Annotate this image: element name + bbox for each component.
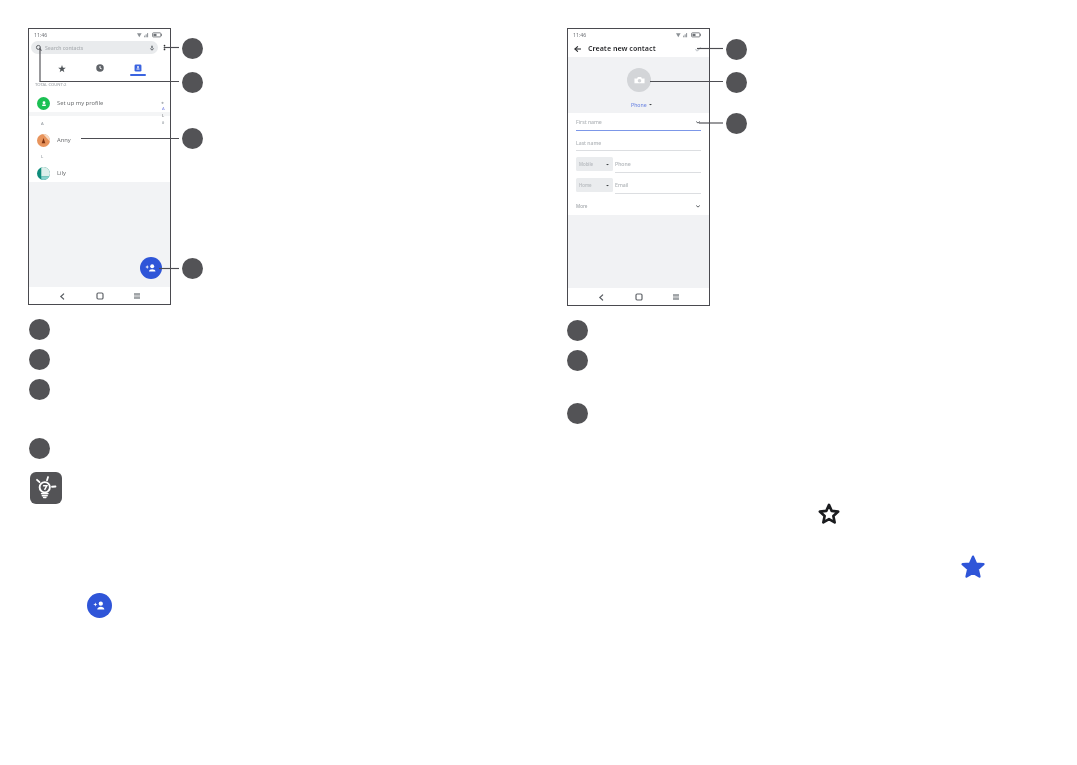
button[interactable]: Callout marker [182,72,203,93]
button[interactable]: Callout marker [567,320,588,341]
button[interactable]: Home [92,288,108,304]
staticText: Set up my profile [57,99,104,107]
button[interactable]: Callout marker [29,379,50,400]
button[interactable]: Add photo [627,68,651,92]
button[interactable]: Home [631,289,647,305]
button[interactable]: Tip [30,472,62,504]
button[interactable]: Anny [29,131,170,149]
staticText: Email [615,181,629,188]
button[interactable]: Search contacts [31,41,158,54]
button[interactable]: Mobile [576,157,613,171]
button[interactable]: Callout marker [29,438,50,459]
staticText: Search contacts [45,44,84,51]
button[interactable]: Callout marker [726,113,747,134]
button[interactable]: Contacts [119,54,157,81]
button[interactable]: Favourites [42,54,81,81]
staticText: Mobile [579,161,594,167]
staticText: A [162,106,165,112]
staticText: 11:46 [573,31,587,38]
button[interactable]: Recent apps [668,289,684,305]
staticText: TOTAL COUNT:2 [35,82,67,88]
button[interactable]: Callout marker [567,350,588,371]
button[interactable]: Save [692,43,704,55]
button[interactable]: Alphabet index [160,101,166,125]
staticText: Last name [576,139,602,146]
staticText: Phone [615,160,631,167]
button[interactable]: More [576,196,701,215]
staticText: ★ [161,101,165,105]
button[interactable]: Lily [29,164,170,182]
staticText: Anny [57,136,71,144]
button[interactable]: Callout marker [29,349,50,370]
button[interactable]: Set up my profile [29,94,170,112]
staticText: L [41,154,44,160]
button[interactable]: First name [576,113,701,130]
staticText: Phone [631,101,647,108]
button[interactable]: Callout marker [567,403,588,424]
button[interactable]: Callout marker [726,39,747,60]
staticText: More [576,203,588,209]
button[interactable]: Callout marker [182,38,203,59]
button[interactable]: Recents [81,54,119,81]
button[interactable]: More options [158,41,170,53]
button[interactable]: Back [54,288,70,304]
staticText: First name [576,118,602,125]
button[interactable]: Favourite off [818,503,840,525]
button[interactable]: Callout marker [29,319,50,340]
button[interactable]: Create new contact [140,257,162,279]
staticText: Create new contact [588,44,656,54]
button[interactable]: Favourite on [962,556,984,578]
staticText: # [162,120,165,125]
staticText: A [41,121,44,127]
button[interactable]: Back [593,289,609,305]
staticText: Home [579,182,592,188]
button[interactable]: Callout marker [182,258,203,279]
staticText: 11:46 [34,31,48,38]
button[interactable]: Last name [576,134,701,150]
button[interactable]: Callout marker [726,72,747,93]
button[interactable]: Back [572,43,584,55]
button[interactable]: Add contact [87,593,112,618]
button[interactable]: Home [576,178,613,192]
staticText: L [162,113,165,119]
button[interactable]: Recent apps [129,288,145,304]
button[interactable]: Callout marker [182,128,203,149]
staticText: Lily [57,169,66,177]
button[interactable]: Account: Phone [568,100,709,108]
